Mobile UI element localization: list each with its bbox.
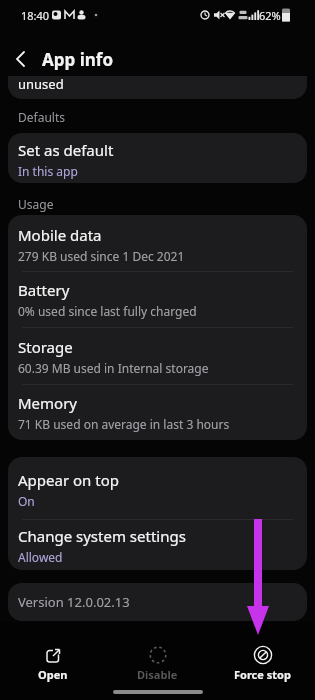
staticText: Defaults	[18, 109, 65, 125]
staticText: 60.39 MB used in Internal storage	[18, 360, 209, 376]
staticText: Allowed	[18, 549, 63, 565]
staticText: 279 KB used since 1 Dec 2021	[18, 248, 185, 264]
button[interactable]: Appear on top	[8, 460, 307, 519]
button[interactable]: Force stop	[210, 646, 315, 682]
staticText: Appear on top	[18, 470, 119, 490]
staticText: Battery	[18, 280, 70, 300]
button[interactable]: Battery	[8, 272, 307, 327]
button[interactable]: Disable	[105, 646, 210, 682]
staticText: App info	[42, 48, 114, 71]
staticText: Open	[38, 667, 68, 682]
button[interactable]: Mobile data	[8, 218, 307, 271]
staticText: 71 KB used on average in last 3 hours	[18, 416, 230, 432]
staticText: 62%	[259, 8, 281, 23]
staticText: On	[18, 493, 35, 509]
button[interactable]: Set as default	[8, 135, 307, 183]
staticText: Change system settings	[18, 526, 186, 546]
staticText: unused	[18, 76, 64, 93]
button[interactable]: Change system settings	[8, 520, 307, 570]
staticText: In this app	[18, 163, 78, 179]
button[interactable]: Storage	[8, 328, 307, 384]
button[interactable]: Memory	[8, 385, 307, 440]
staticText: Version 12.0.02.13	[18, 593, 130, 611]
staticText: Usage	[18, 196, 54, 212]
button[interactable]: App info	[8, 47, 114, 71]
staticText: Force stop	[234, 667, 291, 682]
button[interactable]: Version 12.0.02.13	[8, 583, 307, 621]
button[interactable]: unused	[8, 76, 307, 99]
staticText: Mobile data	[18, 225, 102, 245]
staticText: 0% used since last fully charged	[18, 303, 197, 319]
staticText: Set as default	[18, 140, 114, 160]
staticText: Storage	[18, 337, 73, 357]
staticText: Memory	[18, 393, 78, 413]
button[interactable]: Open	[0, 646, 105, 682]
staticText: Disable	[137, 667, 178, 682]
staticText: 18:40	[21, 8, 50, 23]
